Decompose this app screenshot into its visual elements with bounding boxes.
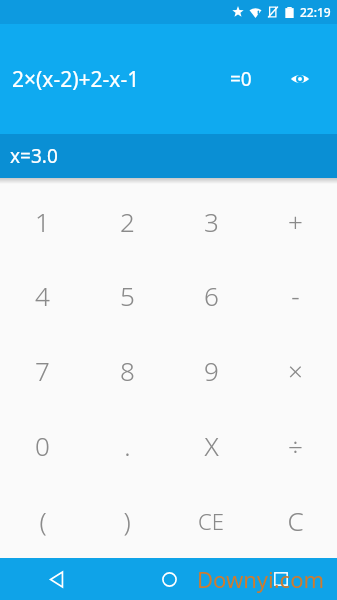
button[interactable]: - [253, 258, 337, 333]
button[interactable]: x=3.0 [0, 134, 337, 178]
staticText: ( [39, 503, 47, 538]
button[interactable]: Show steps [283, 62, 317, 96]
button[interactable]: ÷ [253, 408, 337, 483]
staticText: 2 [120, 204, 135, 239]
staticText: . [124, 428, 131, 463]
button[interactable]: 1 [0, 184, 85, 258]
button[interactable]: 0 [0, 408, 85, 483]
button[interactable]: X [169, 408, 253, 483]
staticText: 5 [120, 278, 135, 313]
staticText: 9 [204, 353, 219, 388]
staticText: ) [123, 503, 131, 538]
staticText: ÷ [288, 428, 303, 463]
staticText: + [288, 204, 303, 239]
staticText: 0 [35, 428, 50, 463]
button[interactable]: 6 [169, 258, 253, 333]
button[interactable]: 3 [169, 184, 253, 258]
button[interactable]: 7 [0, 333, 85, 408]
staticText: 1 [35, 204, 50, 239]
button[interactable]: 4 [0, 258, 85, 333]
button[interactable]: C [253, 483, 337, 558]
staticText: 3 [204, 204, 219, 239]
button[interactable]: 5 [85, 258, 169, 333]
button[interactable]: CE [169, 483, 253, 558]
button[interactable]: =0 [230, 66, 252, 92]
staticText: x=3.0 [10, 143, 58, 169]
button[interactable]: Home [113, 558, 225, 600]
button[interactable]: 9 [169, 333, 253, 408]
staticText: C [287, 503, 304, 538]
button[interactable]: ( [0, 483, 85, 558]
staticText: 6 [204, 278, 219, 313]
staticText: X [204, 428, 219, 463]
staticText: × [288, 353, 303, 388]
staticText: 4 [35, 278, 50, 313]
button[interactable]: Recents [225, 558, 337, 600]
staticText: Downyi.com [197, 564, 325, 594]
staticText: 8 [120, 353, 135, 388]
staticText: 22:19 [300, 4, 331, 20]
button[interactable]: × [253, 333, 337, 408]
staticText: 7 [35, 353, 50, 388]
button[interactable]: Back [0, 558, 113, 600]
button[interactable]: + [253, 184, 337, 258]
staticText: 2×(x-2)+2-x-1 [12, 65, 140, 94]
staticText: - [291, 278, 300, 313]
button[interactable]: 8 [85, 333, 169, 408]
staticText: CE [198, 506, 224, 536]
button[interactable]: 2 [85, 184, 169, 258]
button[interactable]: ) [85, 483, 169, 558]
